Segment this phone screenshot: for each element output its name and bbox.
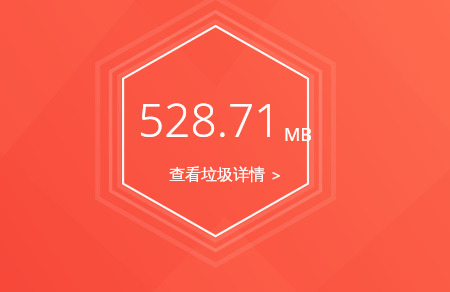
staticText: MB bbox=[284, 122, 313, 147]
button[interactable]: 查看垃圾详情 bbox=[159, 161, 291, 189]
button[interactable]: 查看垃圾详情 bbox=[134, 40, 319, 250]
staticText: 528.71 bbox=[138, 88, 281, 151]
staticText: 查看垃圾详情 bbox=[169, 165, 265, 185]
staticText: > bbox=[272, 165, 281, 185]
